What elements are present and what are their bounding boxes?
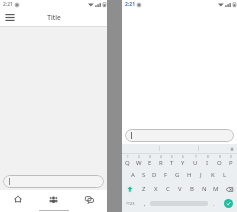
- staticText: S: [142, 171, 146, 179]
- staticText: X: [154, 185, 158, 193]
- staticText: U: [193, 159, 198, 167]
- staticText: B: [190, 185, 194, 193]
- button[interactable]: 8: [201, 154, 213, 168]
- button[interactable]: Z: [138, 182, 150, 196]
- button[interactable]: [199, 144, 237, 153]
- staticText: L: [223, 171, 227, 179]
- staticText: 7: [195, 155, 197, 159]
- staticText: 8: [207, 155, 209, 159]
- staticText: 6: [182, 155, 184, 159]
- button[interactable]: 1: [122, 154, 133, 168]
- staticText: Y: [181, 159, 185, 167]
- button[interactable]: ?123: [122, 196, 139, 211]
- staticText: Title: [47, 13, 61, 22]
- button[interactable]: People: [35, 190, 71, 208]
- staticText: 4: [160, 155, 162, 159]
- button[interactable]: Open navigation menu: [3, 11, 16, 24]
- button[interactable]: Enter: [219, 196, 237, 211]
- staticText: Q: [125, 159, 130, 167]
- staticText: G: [175, 171, 180, 179]
- staticText: 2:21: [125, 1, 135, 8]
- staticText: 9: [219, 155, 221, 159]
- staticText: K: [211, 171, 215, 179]
- staticText: 3: [149, 155, 151, 159]
- staticText: 2: [138, 155, 140, 159]
- button[interactable]: K: [207, 168, 219, 182]
- button[interactable]: J: [195, 168, 207, 182]
- button[interactable]: .: [208, 196, 219, 211]
- button[interactable]: Space: [150, 200, 208, 207]
- button[interactable]: Expand suggestions: [228, 145, 235, 152]
- button[interactable]: F: [160, 168, 171, 182]
- staticText: I: [206, 159, 209, 167]
- button[interactable]: 4: [155, 154, 166, 168]
- button[interactable]: 0: [225, 154, 237, 168]
- staticText: 0: [230, 155, 232, 159]
- button[interactable]: 3: [144, 154, 155, 168]
- button[interactable]: 7: [189, 154, 201, 168]
- staticText: 1: [127, 155, 129, 159]
- staticText: O: [217, 159, 222, 167]
- button[interactable]: [125, 129, 234, 142]
- staticText: C: [166, 185, 170, 193]
- staticText: D: [152, 171, 157, 179]
- button[interactable]: V: [174, 182, 186, 196]
- staticText: P: [229, 159, 233, 167]
- staticText: E: [148, 159, 152, 167]
- button[interactable]: X: [150, 182, 162, 196]
- button[interactable]: Shift: [122, 182, 138, 196]
- button[interactable]: L: [219, 168, 231, 182]
- staticText: H: [187, 171, 192, 179]
- staticText: ,: [144, 200, 146, 208]
- button[interactable]: Home: [0, 190, 35, 208]
- button[interactable]: Backspace: [222, 182, 237, 196]
- staticText: A: [131, 171, 135, 179]
- staticText: V: [178, 185, 182, 193]
- staticText: .: [213, 200, 215, 208]
- button[interactable]: ,: [139, 196, 150, 211]
- staticText: W: [136, 159, 142, 167]
- button[interactable]: 6: [177, 154, 189, 168]
- button[interactable]: Messages: [71, 190, 107, 208]
- staticText: N: [202, 185, 207, 193]
- staticText: T: [170, 159, 174, 167]
- button[interactable]: D: [149, 168, 160, 182]
- staticText: ?123: [126, 201, 135, 206]
- button[interactable]: 9: [213, 154, 225, 168]
- staticText: 5: [171, 155, 173, 159]
- button[interactable]: [3, 175, 104, 188]
- button[interactable]: C: [162, 182, 174, 196]
- button[interactable]: A: [127, 168, 138, 182]
- button[interactable]: M: [210, 182, 222, 196]
- staticText: M: [213, 185, 219, 193]
- staticText: 2:21: [3, 1, 13, 8]
- button[interactable]: S: [138, 168, 149, 182]
- button[interactable]: H: [183, 168, 195, 182]
- button[interactable]: 2: [133, 154, 144, 168]
- button[interactable]: B: [186, 182, 198, 196]
- staticText: J: [200, 171, 202, 179]
- button[interactable]: 5: [166, 154, 177, 168]
- staticText: R: [159, 159, 163, 167]
- button[interactable]: N: [198, 182, 210, 196]
- button[interactable]: G: [171, 168, 183, 182]
- staticText: F: [164, 171, 168, 179]
- staticText: Z: [142, 185, 146, 193]
